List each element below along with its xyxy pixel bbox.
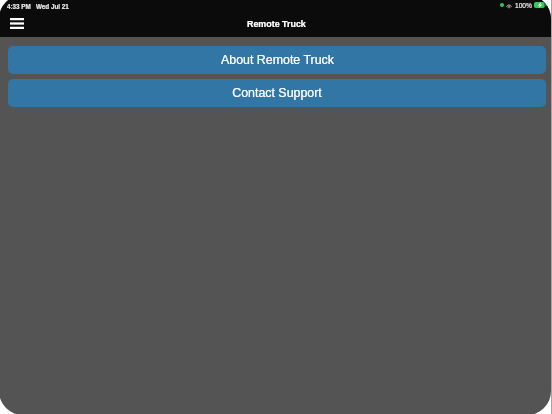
button[interactable]: Open navigation menu [5, 14, 29, 32]
staticText: About Remote Truck [221, 53, 334, 67]
button[interactable]: About Remote Truck [8, 46, 546, 74]
staticText: Remote Truck [247, 19, 306, 29]
staticText: Wed Jul 21 [36, 3, 69, 10]
staticText: 4:33 PM [7, 3, 31, 10]
button[interactable]: Contact Support [8, 79, 546, 107]
staticText: Contact Support [232, 86, 322, 100]
staticText: 100% [515, 2, 532, 9]
